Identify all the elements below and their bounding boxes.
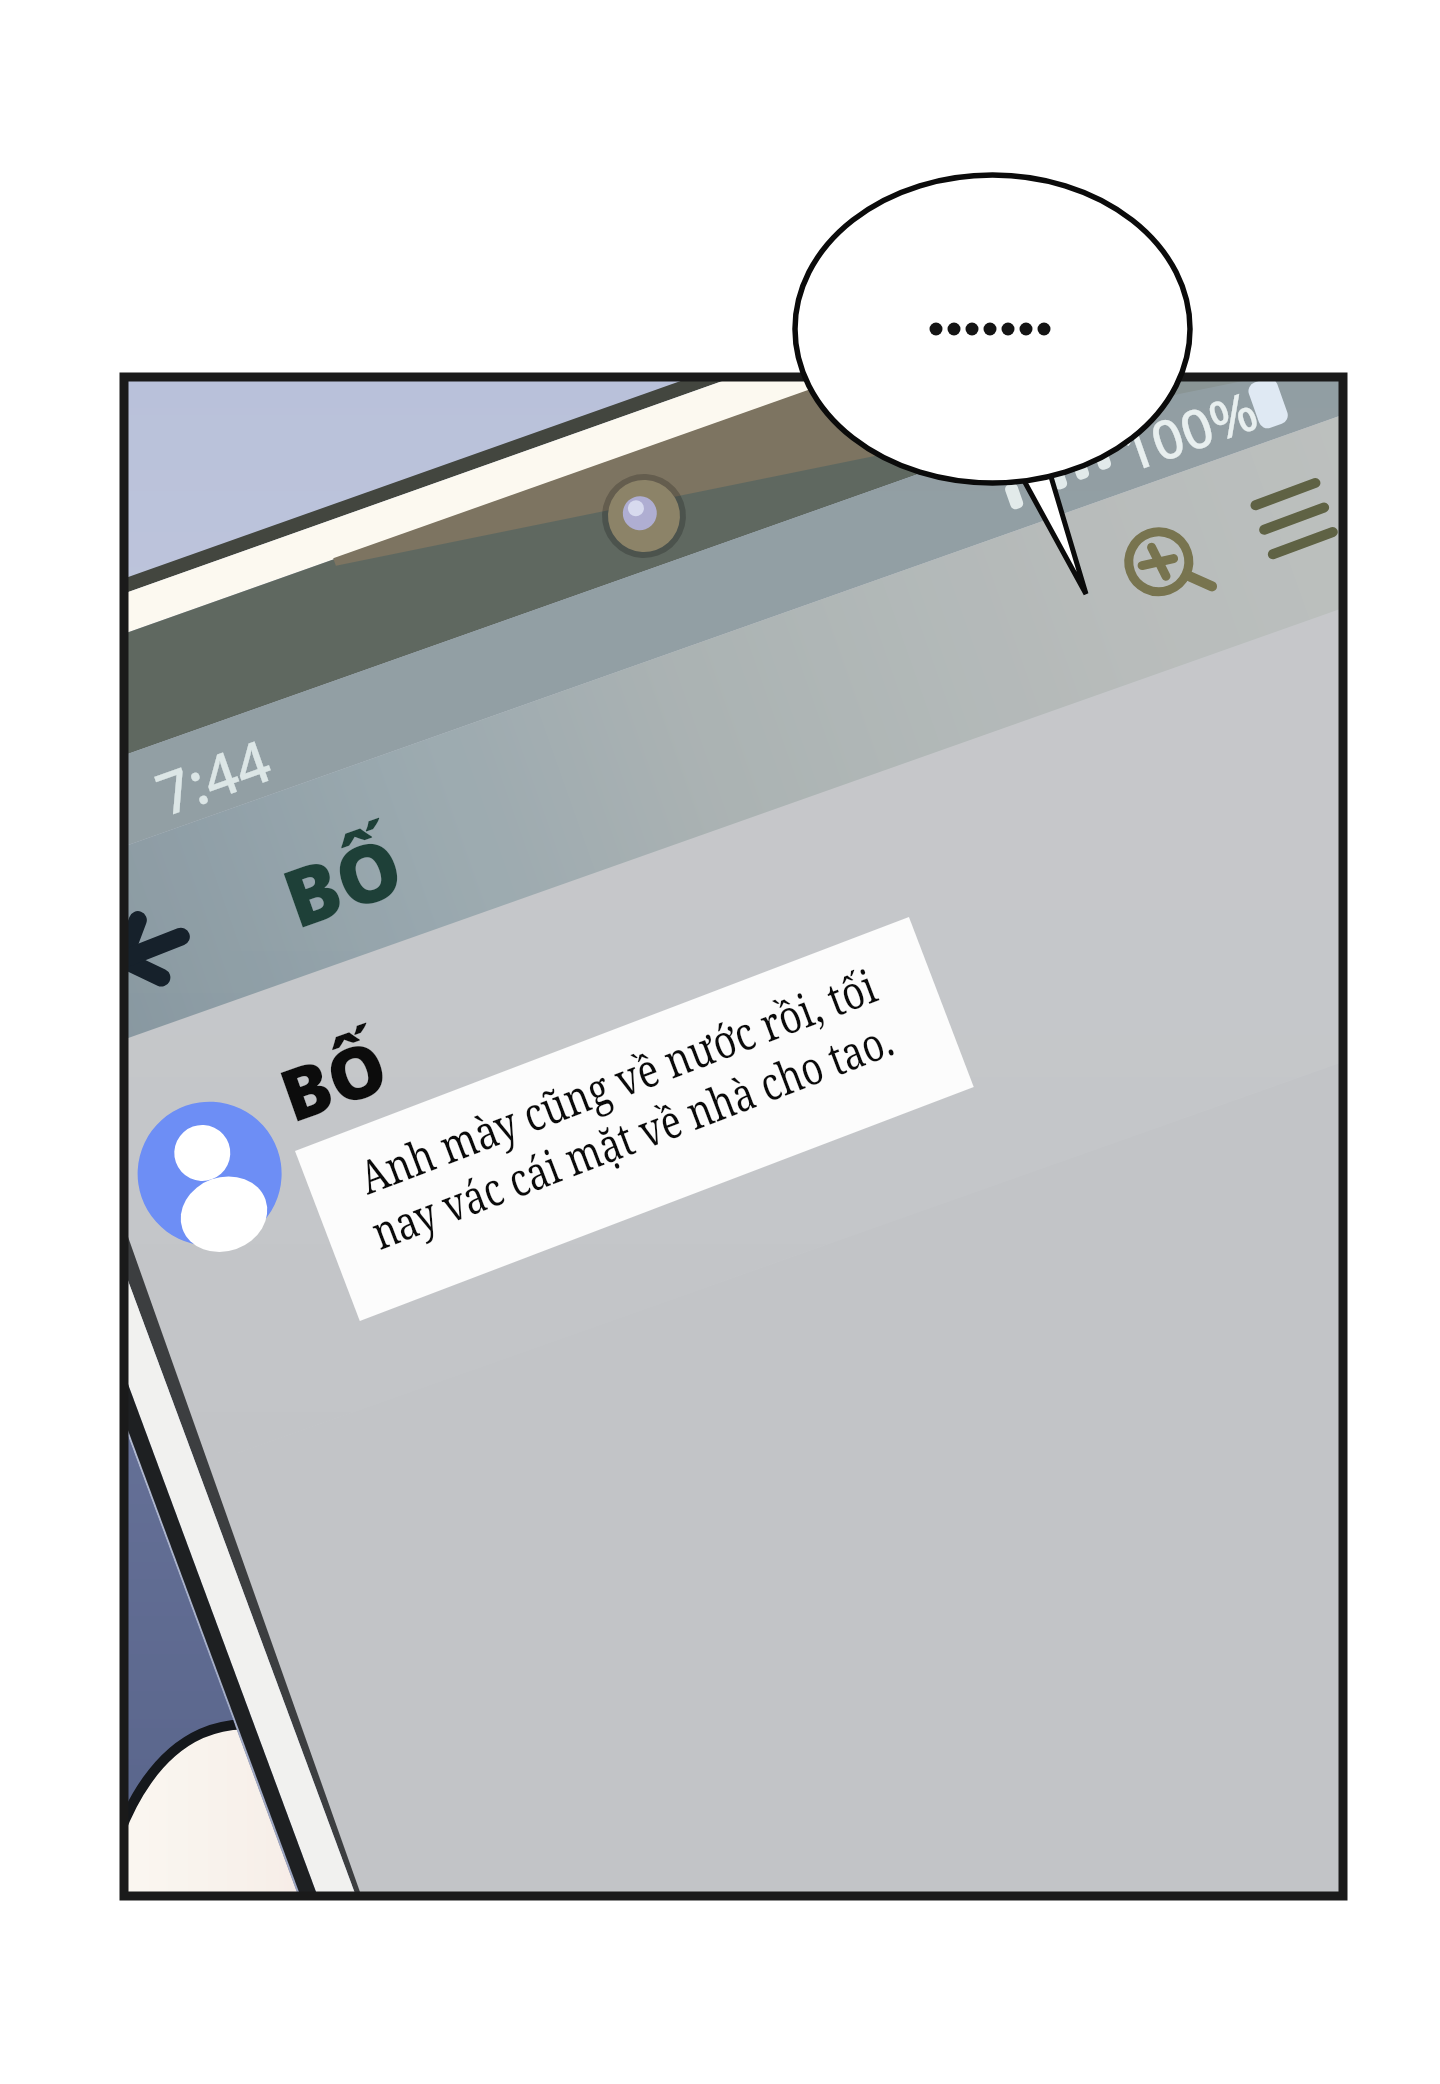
button[interactable]: Profile picture of BỐ <box>140 1104 286 1250</box>
button[interactable]: Search <box>1112 494 1252 634</box>
button[interactable]: Anh mày cũng về nước rồi, tối nay vác cá… <box>296 916 986 1340</box>
button[interactable]: BỐ <box>240 820 490 980</box>
button[interactable]: Menu <box>1228 424 1354 564</box>
button[interactable]: Back <box>96 900 226 1016</box>
